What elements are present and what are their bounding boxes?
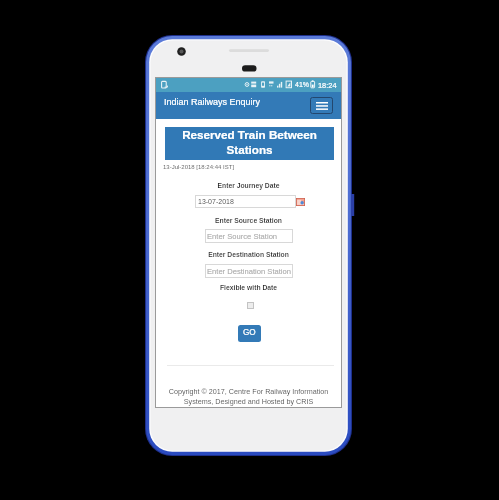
staticText: GO: [243, 328, 256, 337]
staticText: 13-Jul-2018 [18:24:44 IST]: [163, 164, 235, 171]
staticText: Enter Source Station: [207, 232, 278, 240]
staticText: 13-07-2018: [198, 198, 234, 206]
button[interactable]: Menu: [310, 97, 333, 114]
button[interactable]: 13-07-2018: [195, 195, 296, 208]
staticText: Enter Destination Station: [156, 251, 341, 259]
staticText: Reserved Train Between Stations: [182, 128, 317, 157]
staticText: Enter Source Station: [156, 217, 341, 225]
staticText: 41%: [295, 81, 310, 89]
staticText: Enter Destination Station: [207, 267, 292, 275]
button[interactable]: Enter Destination Station: [205, 264, 293, 278]
staticText: Copyright © 2017, Centre For Railway Inf…: [156, 387, 341, 406]
button[interactable]: Pick date: [296, 198, 305, 206]
staticText: Flexible with Date: [156, 284, 341, 292]
staticText: Enter Journey Date: [156, 182, 341, 190]
staticText: Indian Railways Enquiry: [164, 97, 309, 107]
button[interactable]: Enter Source Station: [205, 229, 293, 243]
button[interactable]: Flexible with Date: [247, 302, 254, 309]
button[interactable]: GO: [238, 325, 261, 342]
staticText: 18:24: [318, 81, 337, 89]
